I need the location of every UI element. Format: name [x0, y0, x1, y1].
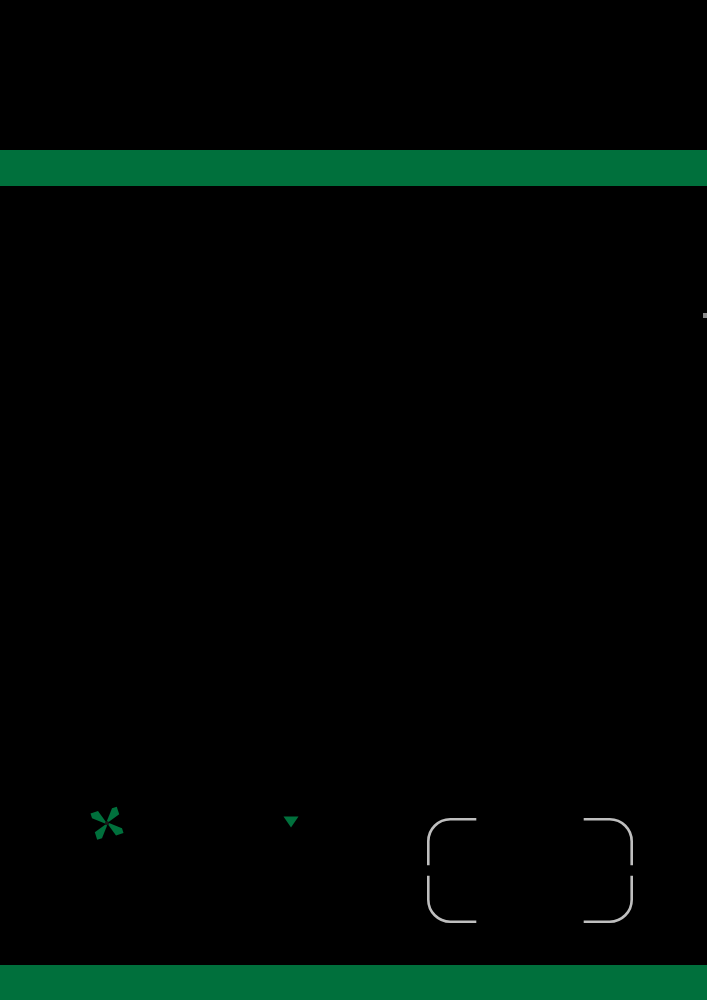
button[interactable]: Expand	[282, 814, 300, 830]
button[interactable]: Scan code	[425, 816, 635, 925]
button[interactable]: Pinwheel logo	[84, 803, 130, 849]
